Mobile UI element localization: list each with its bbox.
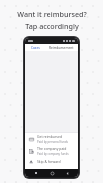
- staticText: Get reimbursed: [37, 134, 62, 139]
- staticText: Tap accordingly: [25, 21, 79, 31]
- staticText: Paid by personal funds: [37, 140, 68, 144]
- staticText: Want it reimbursed?: [17, 9, 87, 19]
- button[interactable]: Cases: [25, 44, 45, 51]
- button[interactable]: Back: [63, 169, 71, 177]
- staticText: The company paid: [37, 146, 67, 151]
- staticText: Skip & forward: [37, 159, 61, 164]
- button[interactable]: Home: [48, 169, 56, 177]
- staticText: Cases: [31, 46, 40, 50]
- staticText: Paid by company funds: [37, 152, 69, 156]
- button[interactable]: Skip & forward: [25, 157, 78, 166]
- button[interactable]: Reimbursement: [45, 44, 78, 51]
- button[interactable]: Recent apps: [32, 169, 40, 177]
- button[interactable]: The company paid: [25, 145, 78, 157]
- button[interactable]: Get reimbursed: [25, 133, 78, 145]
- staticText: Reimbursement: [49, 46, 74, 50]
